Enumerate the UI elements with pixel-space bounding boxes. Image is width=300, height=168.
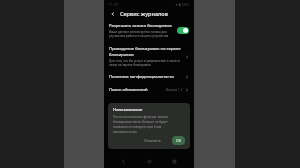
staticText: Проведение блокировок на экране блокиров…	[109, 46, 181, 58]
button[interactable]: Главный экран	[144, 156, 155, 167]
button[interactable]: Назад	[118, 156, 129, 167]
button[interactable]: Назад	[108, 9, 117, 18]
button[interactable]: ОК	[172, 136, 185, 145]
staticText: Сервис журналов	[120, 10, 168, 17]
button[interactable]: Разрешить запись блокировок	[104, 21, 194, 40]
staticText: Отменить	[144, 138, 161, 143]
staticText: Поиск обновлений	[109, 87, 166, 93]
staticText: Разрешить запись блокировок	[109, 23, 172, 29]
button[interactable]: Отменить	[141, 136, 164, 145]
button[interactable]: Переключатель	[177, 27, 189, 34]
button[interactable]: Обзор	[169, 156, 180, 167]
staticText: Напоминание	[113, 107, 143, 113]
staticText: Политика конфиденциальности	[109, 74, 185, 80]
staticText: После отключения функции записи блокиров…	[113, 115, 168, 133]
button[interactable]: Политика конфиденциальности	[104, 72, 194, 82]
staticText: ◦ ▾ ▮ 68%	[172, 2, 190, 7]
staticText: Для того, что бы услуга и уведомление о …	[109, 59, 180, 67]
button[interactable]: Проведение блокировок на экране блокиров…	[104, 44, 194, 69]
button[interactable]: Поиск обновлений	[104, 85, 194, 95]
staticText: Версия 1.2	[166, 88, 183, 92]
staticText: Ваши данные используются только для улуч…	[109, 30, 169, 38]
staticText: ОК	[176, 138, 181, 143]
staticText: 11:47	[108, 2, 119, 7]
